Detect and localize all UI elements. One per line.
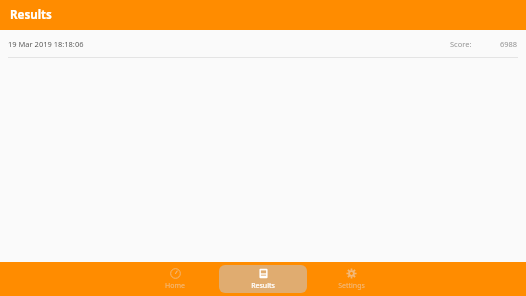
button[interactable]: Home xyxy=(131,265,219,293)
button[interactable]: Settings xyxy=(307,265,395,293)
staticText: 19 Mar 2019 18:18:06 xyxy=(8,39,84,49)
staticText: Results xyxy=(10,7,52,23)
staticText: Home xyxy=(165,281,185,291)
button[interactable]: 19 Mar 2019 18:18:06 xyxy=(0,30,526,57)
staticText: Results xyxy=(251,281,275,291)
staticText: 6988 xyxy=(500,39,518,49)
staticText: Settings xyxy=(338,281,365,291)
button[interactable]: Results xyxy=(219,265,307,293)
staticText: Score: xyxy=(450,39,472,49)
